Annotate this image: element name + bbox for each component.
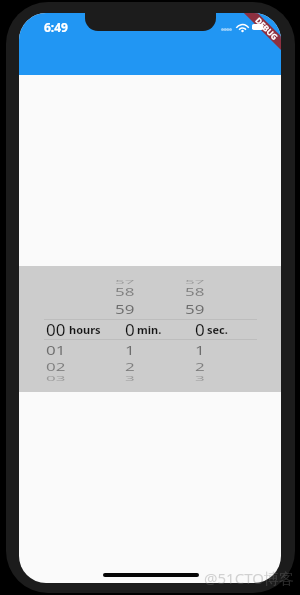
staticText: 2 — [125, 360, 135, 374]
staticText: 59 — [185, 300, 205, 318]
staticText: @51CTO博客 — [204, 568, 294, 588]
staticText: 58 — [115, 285, 135, 299]
staticText: 1 — [125, 342, 135, 358]
staticText: min. — [137, 322, 162, 337]
staticText: hours — [69, 322, 101, 337]
staticText: DEBUG — [253, 15, 281, 42]
staticText: sec. — [207, 322, 228, 337]
other: Battery — [252, 24, 265, 30]
staticText: 6:49 — [44, 19, 68, 35]
other: Wi-Fi — [237, 23, 248, 32]
staticText: 57 — [115, 277, 135, 285]
staticText: 2 — [195, 360, 205, 374]
staticText: 03 — [46, 374, 66, 382]
staticText: 02 — [46, 360, 66, 374]
staticText: 58 — [185, 285, 205, 299]
staticText: 3 — [195, 374, 205, 382]
staticText: 57 — [185, 277, 205, 285]
button[interactable] — [186, 266, 257, 392]
staticText: 59 — [115, 300, 135, 318]
staticText: 1 — [195, 342, 205, 358]
staticText: 0 — [195, 318, 205, 340]
staticText: 00 — [46, 318, 66, 340]
staticText: 0 — [125, 318, 135, 340]
staticText: 01 — [46, 342, 66, 358]
staticText: 3 — [125, 374, 135, 382]
button[interactable] — [44, 266, 115, 392]
other: Cellular signal — [221, 28, 232, 31]
button[interactable] — [115, 266, 186, 392]
